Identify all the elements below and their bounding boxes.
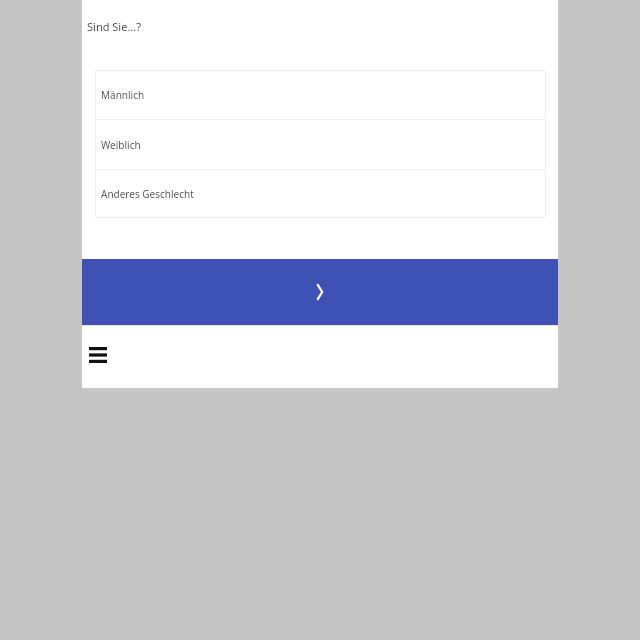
- button[interactable]: Männlich: [95, 70, 546, 119]
- button[interactable]: Weiter: [82, 259, 558, 325]
- staticText: Sind Sie...?: [87, 19, 141, 34]
- button[interactable]: Anderes Geschlecht: [95, 170, 546, 218]
- button[interactable]: Menü: [85, 342, 111, 368]
- staticText: Weiblich: [101, 138, 141, 152]
- staticText: Anderes Geschlecht: [101, 187, 194, 201]
- staticText: Männlich: [101, 88, 145, 102]
- button[interactable]: Weiblich: [95, 120, 546, 169]
